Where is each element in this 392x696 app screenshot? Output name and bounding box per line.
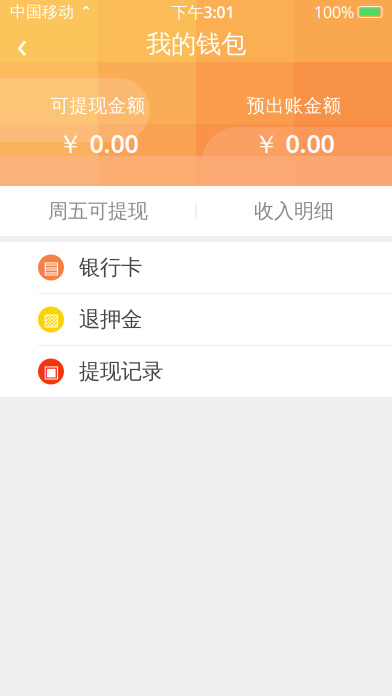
button[interactable]: 返回 <box>0 22 44 66</box>
button[interactable]: 银行卡 <box>0 242 392 293</box>
staticText: ￥ 0.00 <box>57 126 138 160</box>
staticText: ▤ <box>43 258 59 277</box>
staticText: ‹ <box>16 20 27 68</box>
staticText: 银行卡 <box>79 254 142 281</box>
staticText: 我的钱包 <box>146 28 246 59</box>
staticText: 可提现金额 <box>50 94 145 117</box>
button[interactable]: 提现记录 <box>0 346 392 397</box>
staticText: 周五可提现 <box>48 199 148 223</box>
button[interactable]: 退押金 <box>0 294 392 345</box>
staticText: 100% <box>314 1 354 23</box>
staticText: 预出账金额 <box>246 94 341 117</box>
staticText: ⌃ <box>80 4 92 20</box>
staticText: 退押金 <box>79 306 142 333</box>
staticText: 提现记录 <box>79 358 163 385</box>
staticText: ￥ 0.00 <box>253 126 334 160</box>
staticText: ▨ <box>43 310 59 329</box>
staticText: 下午3:01 <box>171 1 234 23</box>
button[interactable]: 周五可提现 <box>0 186 196 236</box>
staticText: 收入明细 <box>254 199 334 223</box>
staticText: 中国移动 <box>10 2 74 22</box>
staticText: ▣ <box>43 362 59 381</box>
button[interactable]: 收入明细 <box>196 186 392 236</box>
